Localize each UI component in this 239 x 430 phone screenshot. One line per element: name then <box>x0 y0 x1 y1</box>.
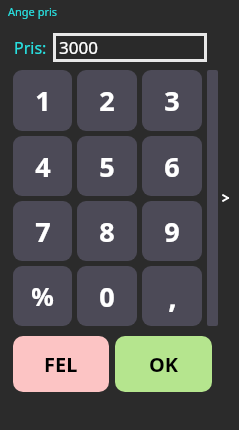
staticText: Ange pris <box>8 4 58 19</box>
button[interactable]: 6 <box>142 136 202 196</box>
staticText: 9 <box>164 213 180 250</box>
staticText: 3 <box>164 82 180 119</box>
staticText: , <box>168 276 177 317</box>
button[interactable]: % <box>13 266 72 326</box>
button[interactable]: FEL <box>13 336 109 392</box>
button[interactable]: 0 <box>77 266 137 326</box>
button[interactable]: 2 <box>77 70 137 131</box>
staticText: 0 <box>99 278 115 315</box>
staticText: 3000 <box>59 36 98 59</box>
button[interactable]: 7 <box>13 201 72 261</box>
staticText: % <box>31 279 54 313</box>
button[interactable]: Next <box>220 192 232 204</box>
button[interactable]: 8 <box>77 201 137 261</box>
staticText: 7 <box>35 213 51 250</box>
button[interactable]: 3000 <box>56 36 204 59</box>
staticText: 8 <box>99 213 115 250</box>
staticText: 2 <box>99 82 115 119</box>
button[interactable]: 1 <box>13 70 72 131</box>
button[interactable]: OK <box>115 336 212 392</box>
staticText: OK <box>149 351 179 378</box>
staticText: 1 <box>35 82 51 119</box>
button[interactable]: 9 <box>142 201 202 261</box>
staticText: FEL <box>44 351 78 378</box>
staticText: 6 <box>164 148 180 185</box>
staticText: 5 <box>99 148 115 185</box>
button[interactable]: 3 <box>142 70 202 131</box>
button[interactable]: 5 <box>77 136 137 196</box>
button[interactable]: 4 <box>13 136 72 196</box>
staticText: Pris: <box>14 37 47 59</box>
staticText: 4 <box>35 148 51 185</box>
button[interactable]: , <box>142 266 202 326</box>
